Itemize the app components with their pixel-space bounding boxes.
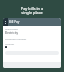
- button[interactable]: Save biller: [5, 46, 7, 48]
- button[interactable]: Menu: [3, 18, 8, 26]
- staticText: Select biller: [5, 27, 18, 30]
- staticText: Amount: [5, 42, 15, 45]
- button[interactable]: [3, 62, 61, 68]
- staticText: Consumer number: [5, 37, 27, 40]
- staticText: Bill Pay: [9, 20, 20, 24]
- staticText: Pay bills in a single place: [4, 6, 60, 16]
- staticText: Electricity: [5, 31, 18, 35]
